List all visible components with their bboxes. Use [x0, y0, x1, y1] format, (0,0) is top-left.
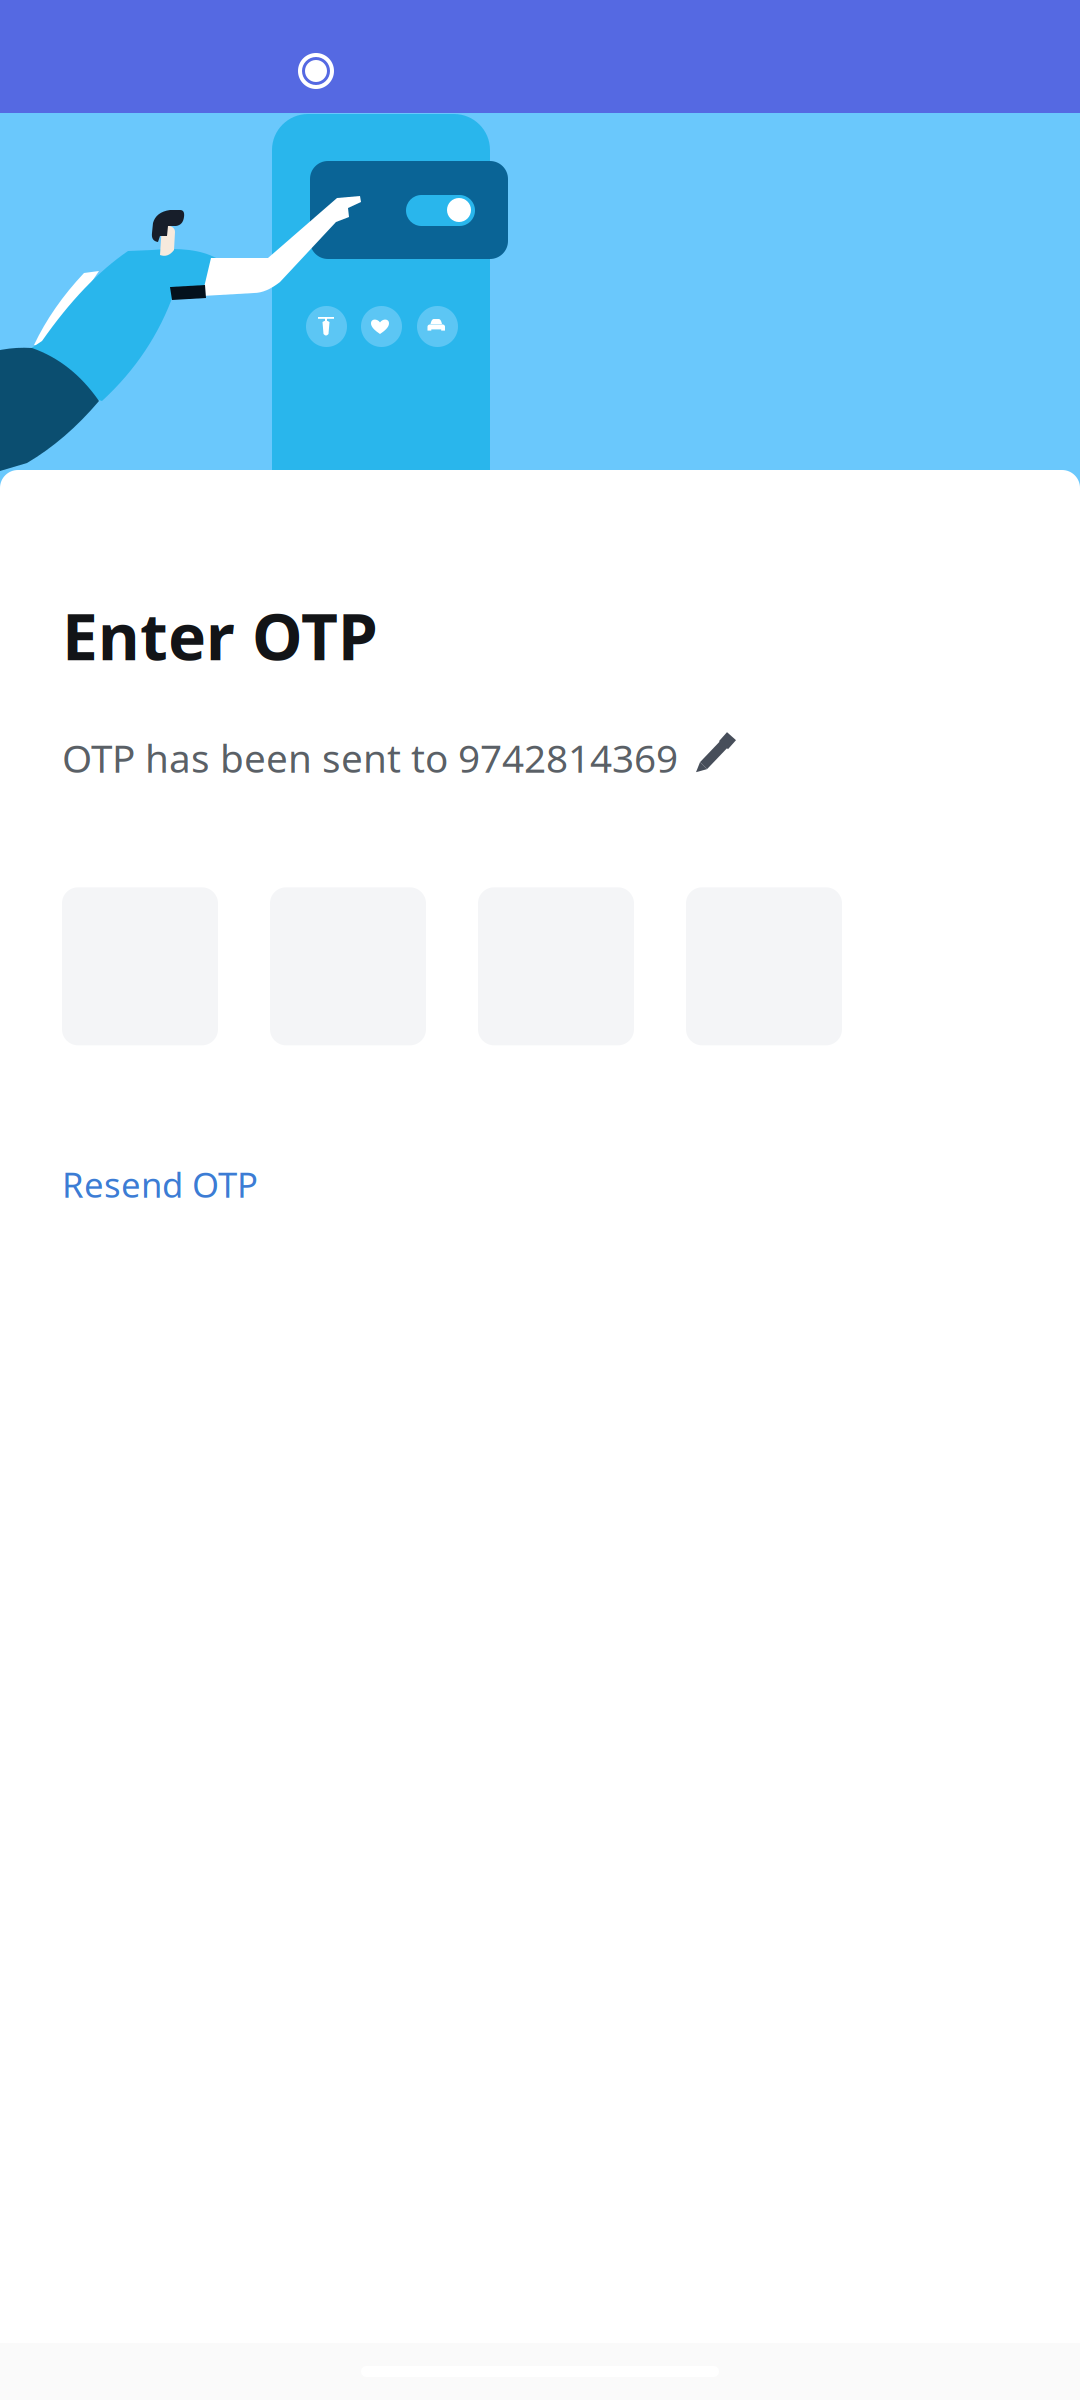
button[interactable]: Edit phone number — [694, 737, 735, 778]
button[interactable]: Resend OTP — [62, 1161, 258, 1207]
staticText: OTP has been sent to 9742814369 — [62, 732, 678, 783]
staticText: Enter OTP — [62, 593, 378, 678]
staticText: Resend OTP — [62, 1161, 258, 1207]
